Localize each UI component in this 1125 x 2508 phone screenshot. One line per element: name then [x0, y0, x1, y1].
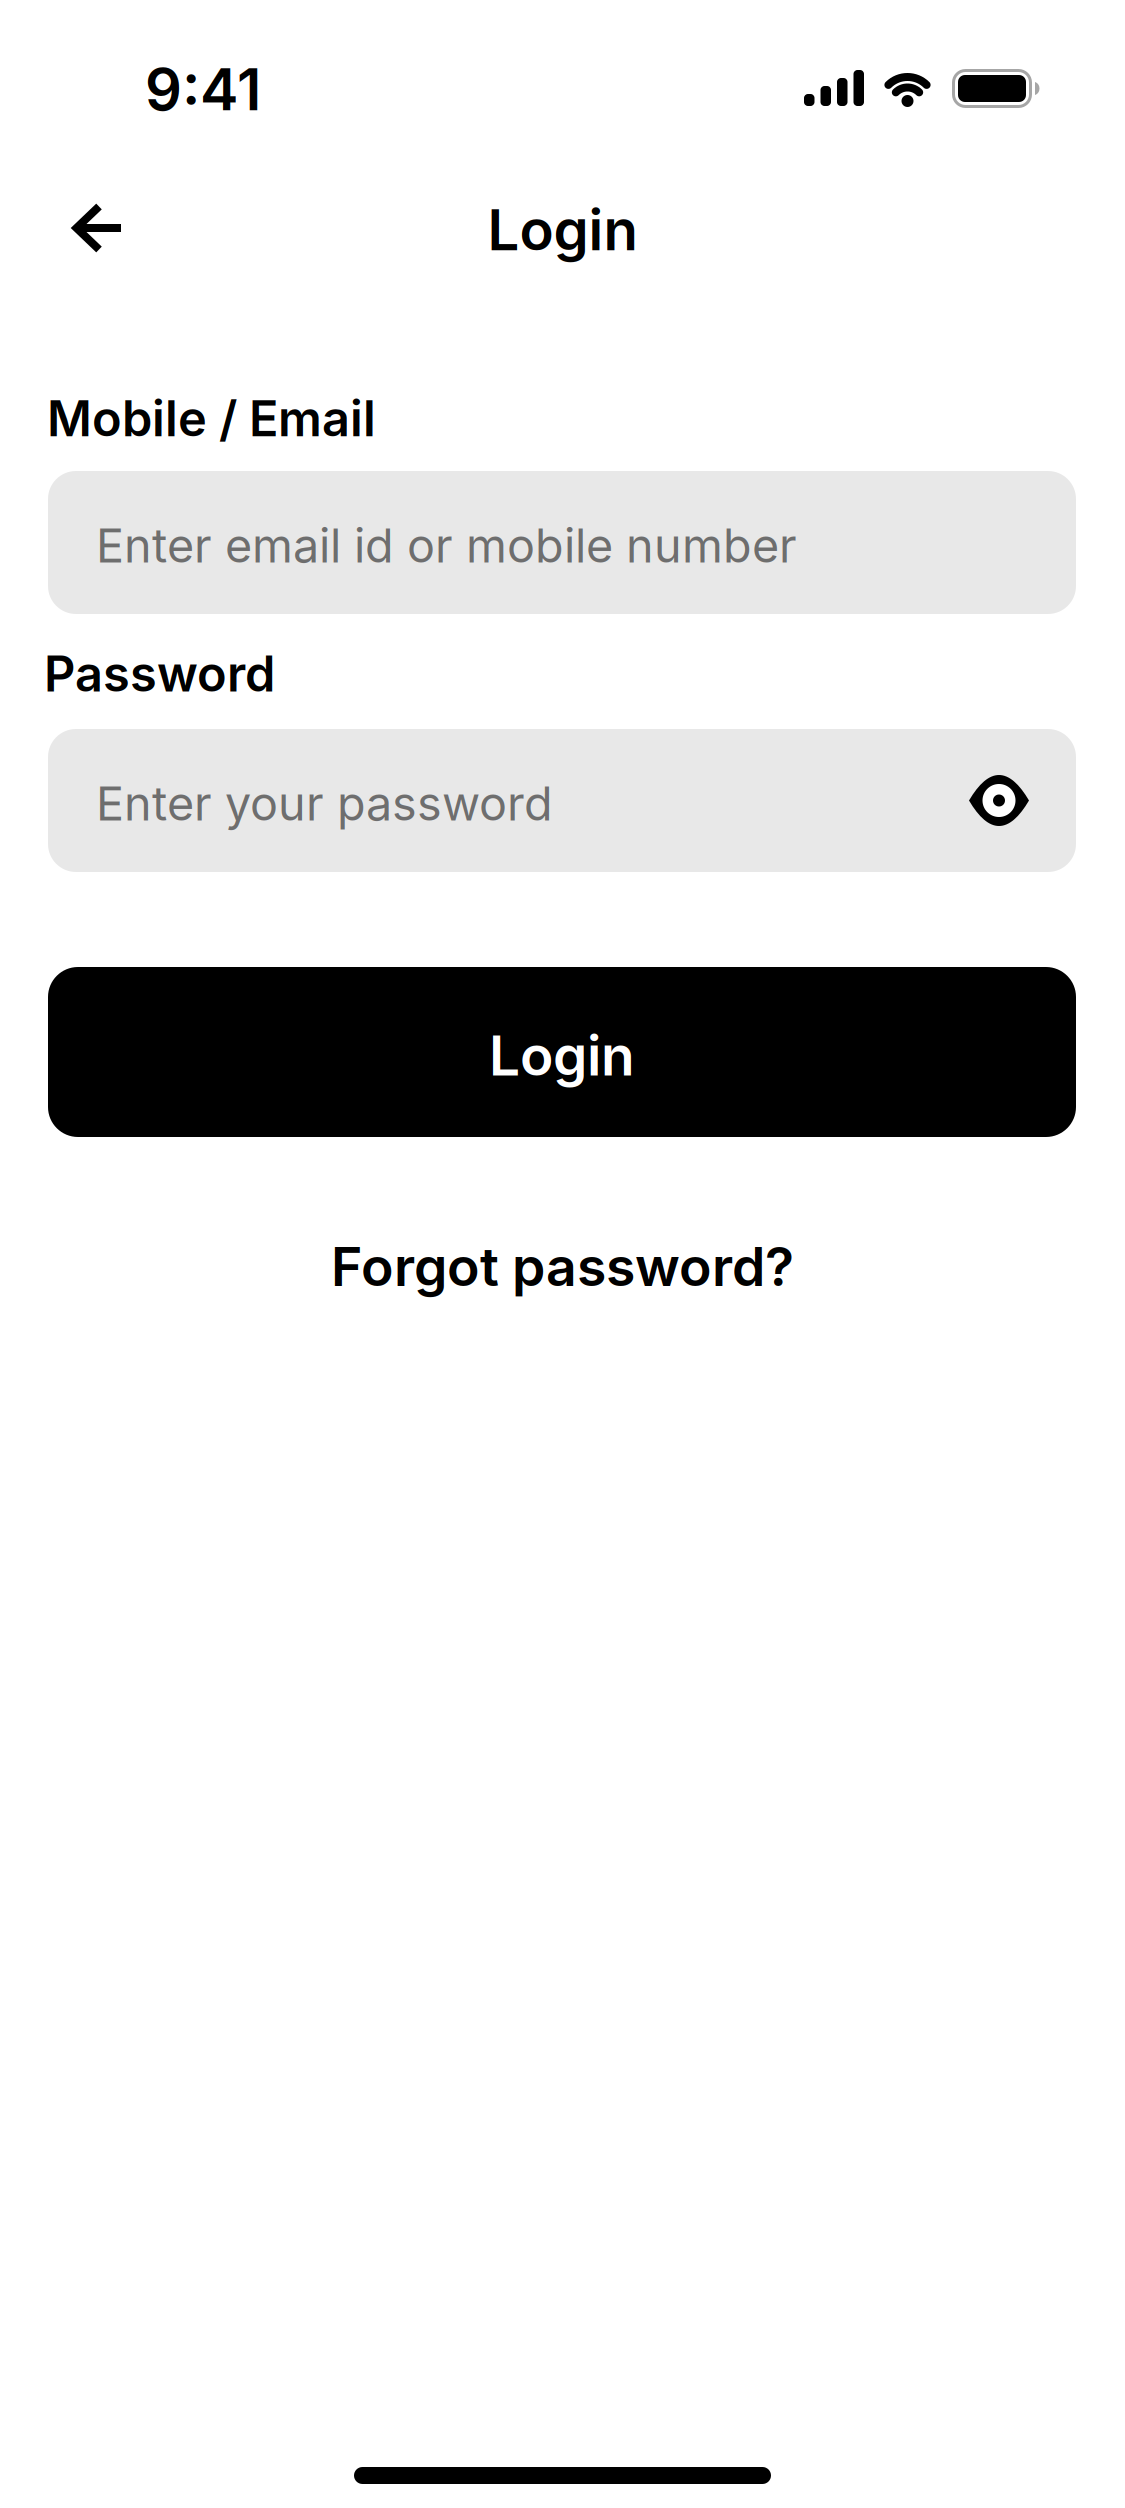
staticText: 9:41 — [145, 54, 261, 124]
button[interactable]: Mobile or email text field — [48, 471, 1076, 614]
staticText: Enter your password — [96, 775, 553, 832]
staticText: Enter email id or mobile number — [96, 517, 797, 574]
button[interactable]: Login — [48, 967, 1076, 1137]
staticText: Login — [489, 1022, 635, 1089]
button[interactable]: Forgot password? — [331, 1234, 794, 1299]
staticText: Mobile / Email — [47, 389, 376, 448]
staticText: Login — [487, 196, 637, 264]
button[interactable]: Password text field — [48, 729, 1076, 872]
button[interactable]: Show password — [969, 774, 1029, 826]
staticText: Password — [44, 644, 275, 703]
staticText: Forgot password? — [331, 1234, 794, 1299]
